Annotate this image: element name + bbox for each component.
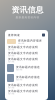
staticText: 来源 · 3小时前 <box>16 69 22 71</box>
staticText: 资讯标题内容描述 <box>18 39 42 42</box>
staticText: 资讯标题文字内容说明 <box>8 57 38 61</box>
staticText: 推荐阅读 <box>8 33 20 37</box>
staticText: 资讯标题内容描述 <box>16 65 40 69</box>
staticText: 资讯信息 <box>11 5 43 15</box>
staticText: 资讯标题文字内容说明 <box>8 45 38 49</box>
staticText: 来源 · 1小时前 <box>8 87 14 89</box>
staticText: 来源 · 1小时前 <box>8 49 14 51</box>
staticText: 来源 · 1小时前 <box>8 61 14 63</box>
staticText: 资讯标题文字内容说明 <box>8 89 38 93</box>
staticText: 来源 · 3小时前 <box>16 79 22 81</box>
staticText: 来源 · 3小时前 <box>18 42 24 44</box>
staticText: 资讯标题文字内容说明 <box>8 83 38 87</box>
staticText: 来源 · 1小时前 <box>8 55 14 57</box>
staticText: 资讯标题文字内容说明 <box>8 51 38 55</box>
staticText: 资讯标题内容描述 <box>16 75 40 79</box>
staticText: 最新最热资讯内容 <box>15 16 39 19</box>
staticText: 来源 · 1小时前 <box>8 93 14 95</box>
